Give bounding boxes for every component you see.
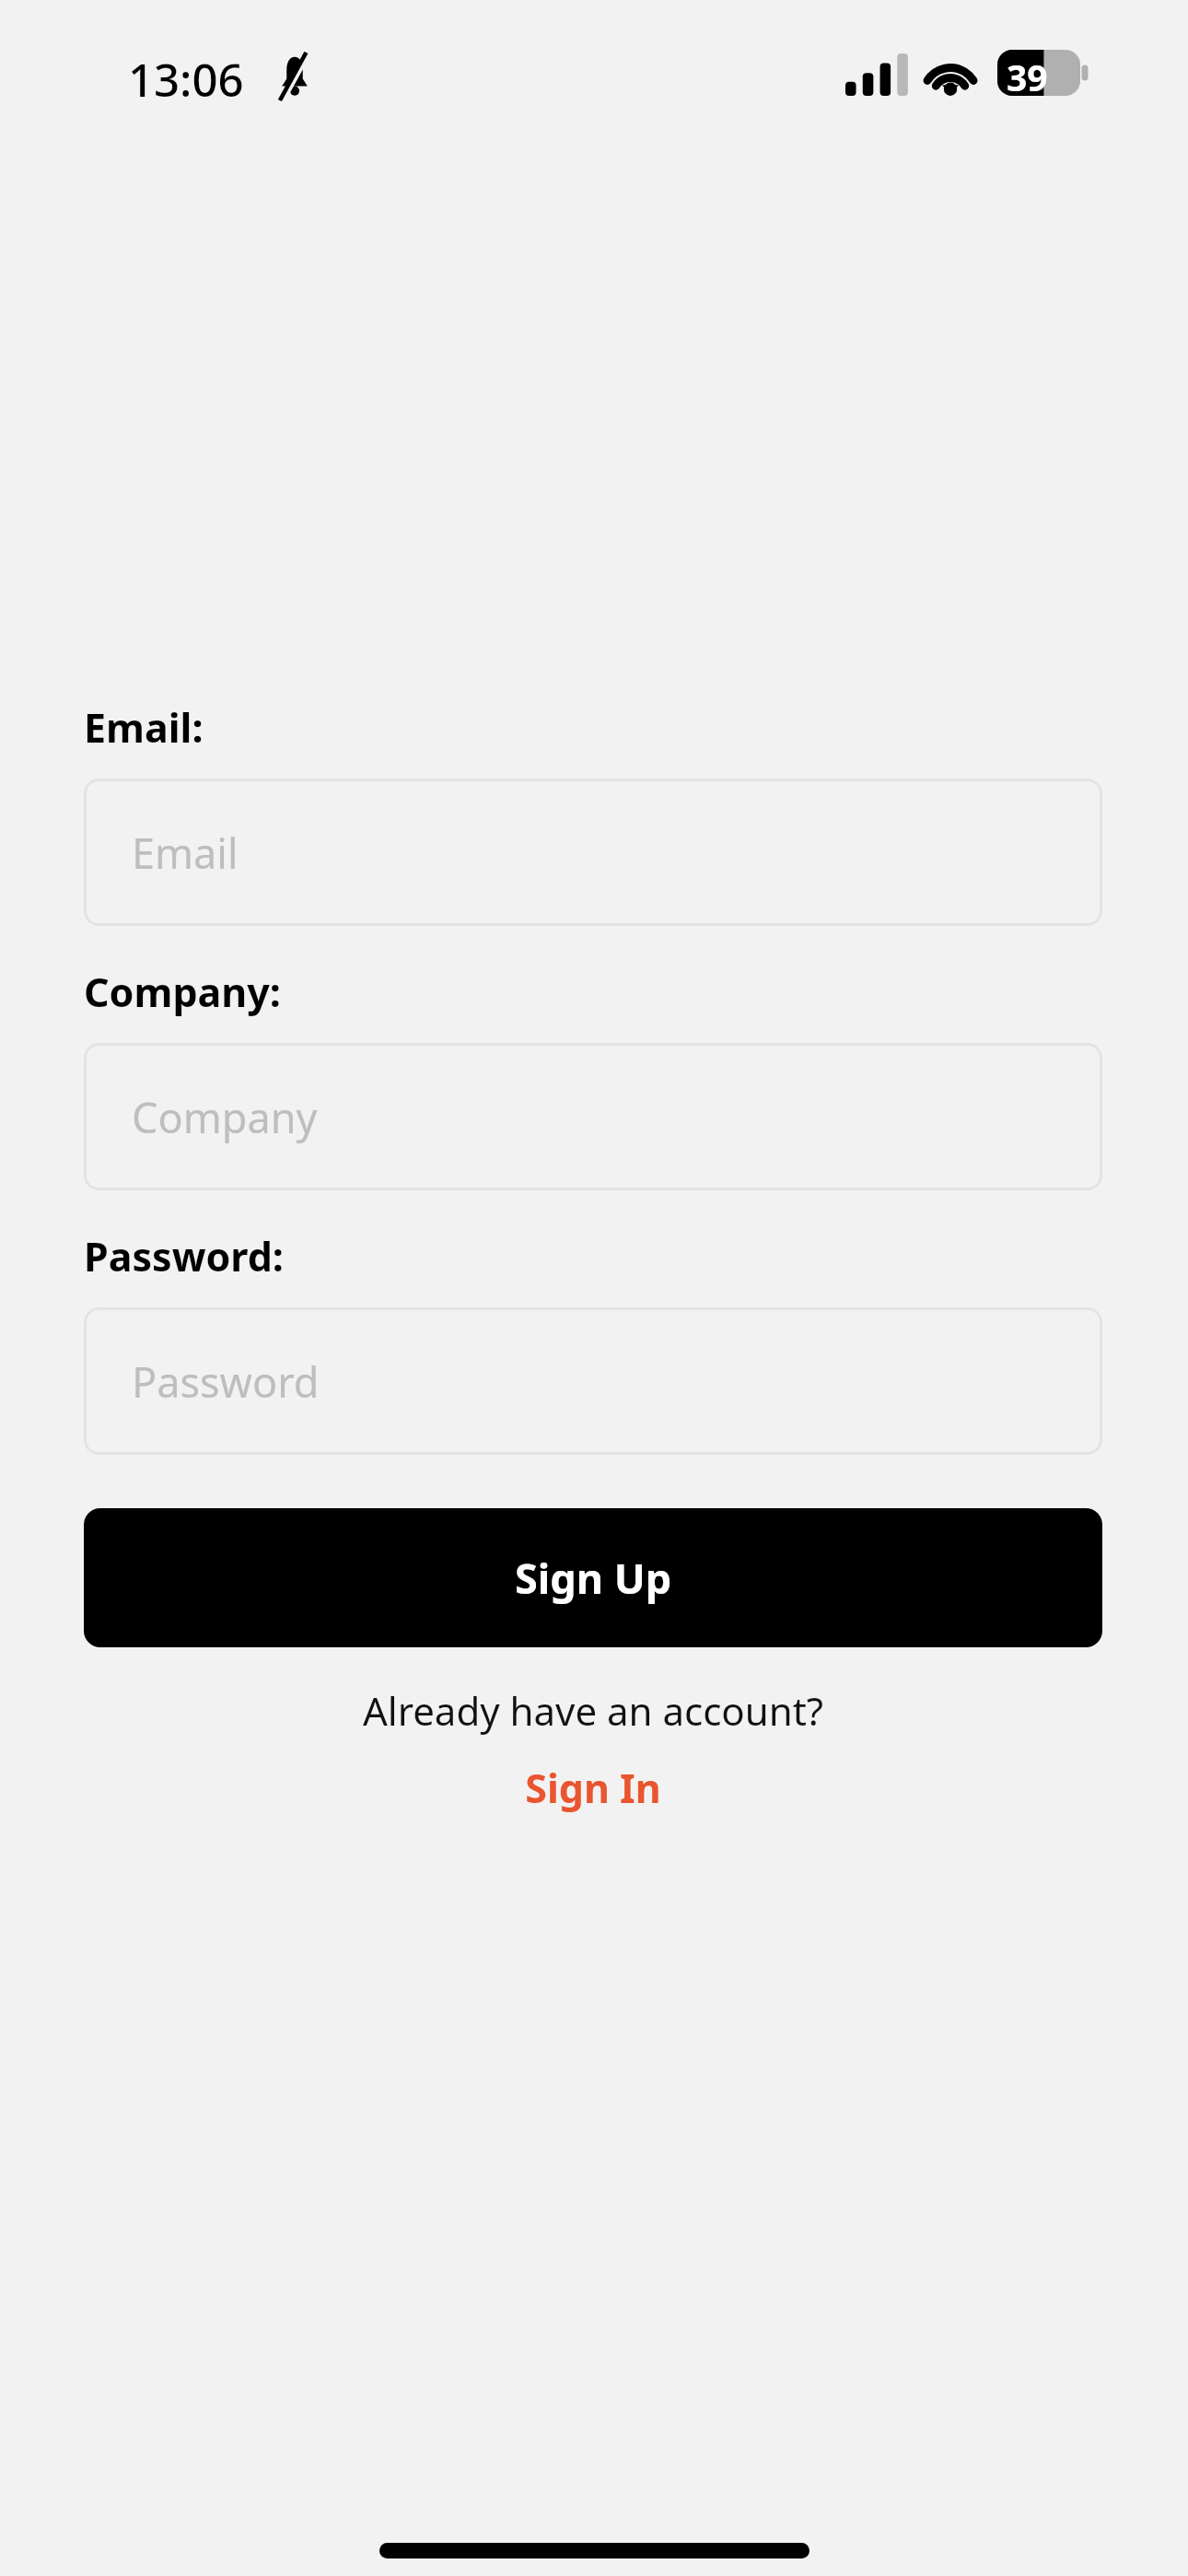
other: Silent mode bbox=[274, 53, 316, 100]
other: Cellular signal bbox=[845, 53, 908, 96]
button[interactable]: Sign Up bbox=[84, 1508, 1102, 1647]
staticText: Company: bbox=[84, 965, 281, 1019]
staticText: 39 bbox=[1007, 53, 1048, 101]
staticText: Company bbox=[132, 1089, 318, 1145]
other: Battery 39 percent bbox=[997, 50, 1089, 96]
staticText: Sign Up bbox=[515, 1550, 672, 1606]
staticText: Password bbox=[132, 1353, 320, 1410]
staticText: Password: bbox=[84, 1229, 284, 1283]
staticText: Sign In bbox=[525, 1761, 661, 1815]
button[interactable]: Password bbox=[84, 1307, 1102, 1455]
button[interactable]: Sign In bbox=[84, 1761, 1102, 1815]
staticText: Already have an account? bbox=[84, 1684, 1102, 1737]
button[interactable]: Company bbox=[84, 1043, 1102, 1190]
staticText: Email bbox=[132, 825, 239, 881]
other: Wi-Fi bbox=[921, 51, 980, 97]
staticText: Email: bbox=[84, 700, 204, 755]
button[interactable]: Email bbox=[84, 779, 1102, 926]
staticText: 13:06 bbox=[128, 49, 244, 111]
